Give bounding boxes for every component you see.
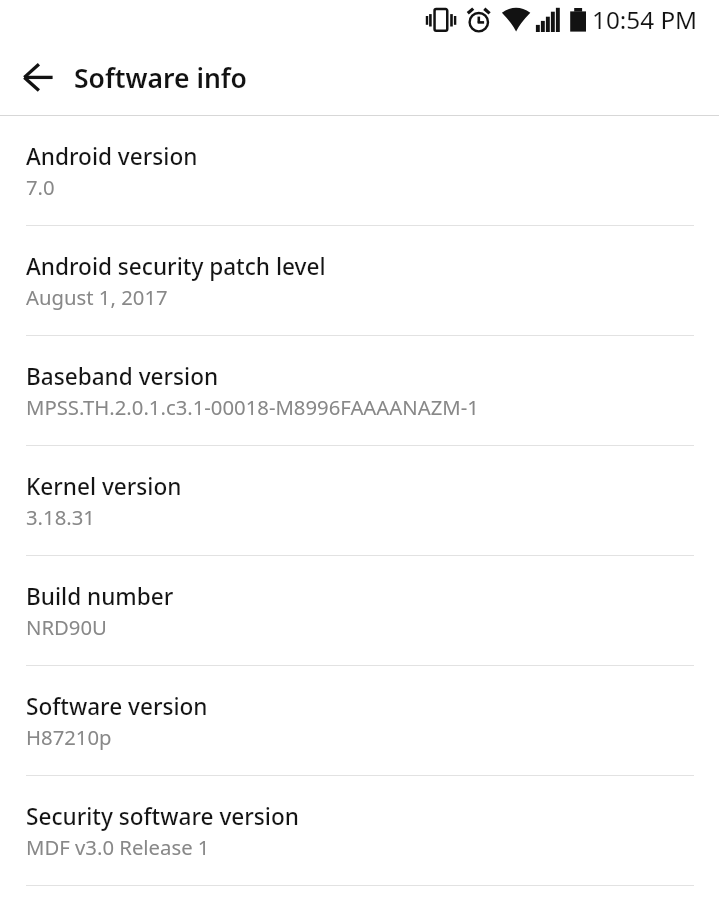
staticText: MDF v3.0 Release 1 [26,833,210,861]
button[interactable]: Build number [0,556,719,666]
button[interactable]: Baseband version [0,336,719,446]
staticText: MPSS.TH.2.0.1.c3.1-00018-M8996FAAAANAZM-… [26,393,479,421]
button[interactable]: Android version [0,116,719,226]
staticText: Software info [74,60,247,96]
button[interactable]: Security software version [0,776,719,886]
staticText: 7.0 [26,173,55,201]
button[interactable]: Navigate up [13,54,65,106]
staticText: H87210p [26,723,112,751]
staticText: Kernel version [26,471,182,502]
button[interactable]: Software version [0,666,719,776]
staticText: Android security patch level [26,251,326,282]
staticText: Software version [26,691,208,722]
button[interactable]: Android security patch level [0,226,719,336]
staticText: Baseband version [26,361,219,392]
staticText: NRD90U [26,613,107,641]
staticText: 10:54 PM [592,3,698,36]
staticText: August 1, 2017 [26,283,168,311]
button[interactable]: Kernel version [0,446,719,556]
staticText: Build number [26,581,174,612]
staticText: 3.18.31 [26,503,95,531]
staticText: Android version [26,141,198,172]
staticText: Security software version [26,801,299,832]
